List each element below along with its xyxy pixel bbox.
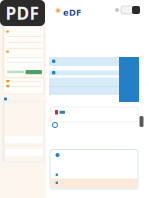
button[interactable]: Scroll (139, 116, 143, 127)
button[interactable]: Page number (121, 6, 133, 14)
button[interactable]: More options (132, 6, 140, 14)
button[interactable]: Attached document (50, 107, 138, 122)
staticText: PDF (5, 1, 39, 24)
button[interactable]: PDF document (0, 0, 45, 26)
button[interactable]: Help (52, 122, 57, 127)
staticText: eDF (63, 6, 81, 18)
button[interactable]: Zoom out (115, 8, 119, 12)
